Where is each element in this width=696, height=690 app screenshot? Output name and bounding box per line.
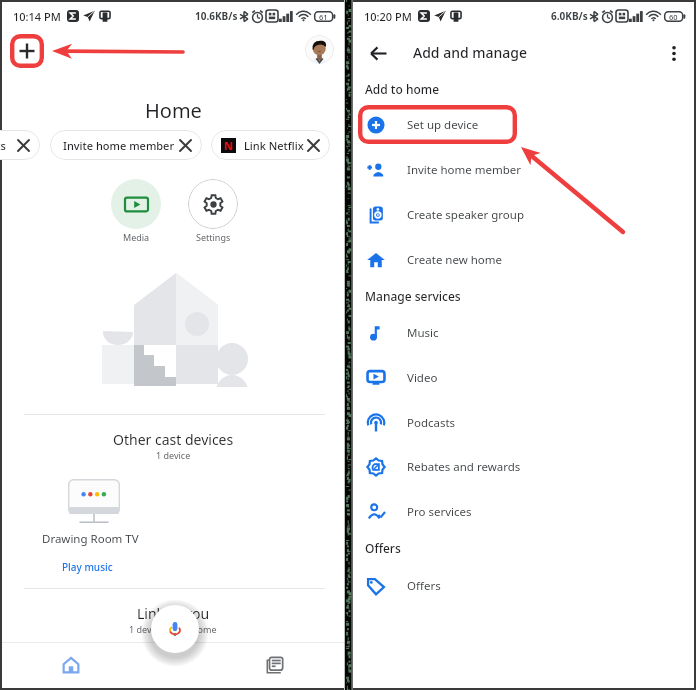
button[interactable]: Home (54, 648, 88, 682)
staticText: Music (407, 325, 439, 341)
staticText: 1 device in the home (129, 623, 217, 635)
staticText: 10:14 PM (13, 9, 61, 24)
staticText: Media (123, 231, 150, 243)
staticText: Link to you (137, 604, 210, 623)
button[interactable]: Add lights (0, 130, 40, 160)
button[interactable]: Offers (353, 568, 694, 604)
button[interactable]: More options (659, 38, 689, 68)
staticText: Set up device (407, 117, 479, 133)
button[interactable]: Account (305, 35, 334, 64)
staticText: Invite home member (63, 138, 175, 153)
button[interactable]: Create new home (353, 242, 694, 278)
button[interactable]: Set up device (353, 107, 694, 143)
button[interactable]: Pro services (353, 494, 694, 530)
staticText: Pro services (407, 504, 472, 520)
button[interactable]: Add (14, 38, 40, 64)
staticText: Offers (365, 540, 401, 556)
staticText: 10.6KB/s (195, 9, 238, 23)
button[interactable]: Google Assistant (151, 605, 199, 653)
button[interactable]: Back (363, 38, 393, 68)
staticText: Video (407, 370, 438, 386)
button[interactable]: Media (111, 179, 161, 243)
staticText: Link Netflix (244, 138, 304, 153)
button[interactable]: Rebates and rewards (353, 449, 694, 485)
staticText: 61 (319, 12, 328, 22)
staticText: Manage services (365, 288, 461, 304)
button[interactable]: Create speaker group (353, 197, 694, 233)
staticText: Settings (196, 231, 231, 243)
button[interactable]: Play music (58, 558, 117, 576)
staticText: Invite home member (407, 162, 522, 178)
staticText: Add lights (0, 138, 6, 153)
staticText: Play music (62, 560, 113, 574)
button[interactable]: Feed (258, 648, 292, 682)
staticText: 6.0KB/s (551, 9, 588, 23)
button[interactable]: Podcasts (353, 405, 694, 441)
staticText: Create new home (407, 252, 503, 268)
staticText: Drawing Room TV (42, 531, 139, 547)
button[interactable]: Music (353, 315, 694, 351)
button[interactable]: N (211, 130, 330, 160)
staticText: Offers (407, 578, 441, 594)
button[interactable]: Invite home member (353, 152, 694, 188)
staticText: 1 device (156, 449, 191, 461)
staticText: Rebates and rewards (407, 459, 521, 475)
button[interactable]: Video (353, 360, 694, 396)
staticText: Podcasts (407, 415, 456, 431)
button[interactable]: Settings (188, 179, 238, 243)
staticText: 10:20 PM (364, 9, 412, 24)
staticText: Home (145, 97, 202, 124)
staticText: Add to home (365, 81, 440, 97)
staticText: N (224, 138, 234, 153)
staticText: Add and manage (413, 43, 528, 62)
staticText: Create speaker group (407, 207, 524, 223)
staticText: Other cast devices (113, 430, 234, 449)
button[interactable]: Invite home member (50, 130, 202, 160)
staticText: 60 (669, 12, 678, 22)
